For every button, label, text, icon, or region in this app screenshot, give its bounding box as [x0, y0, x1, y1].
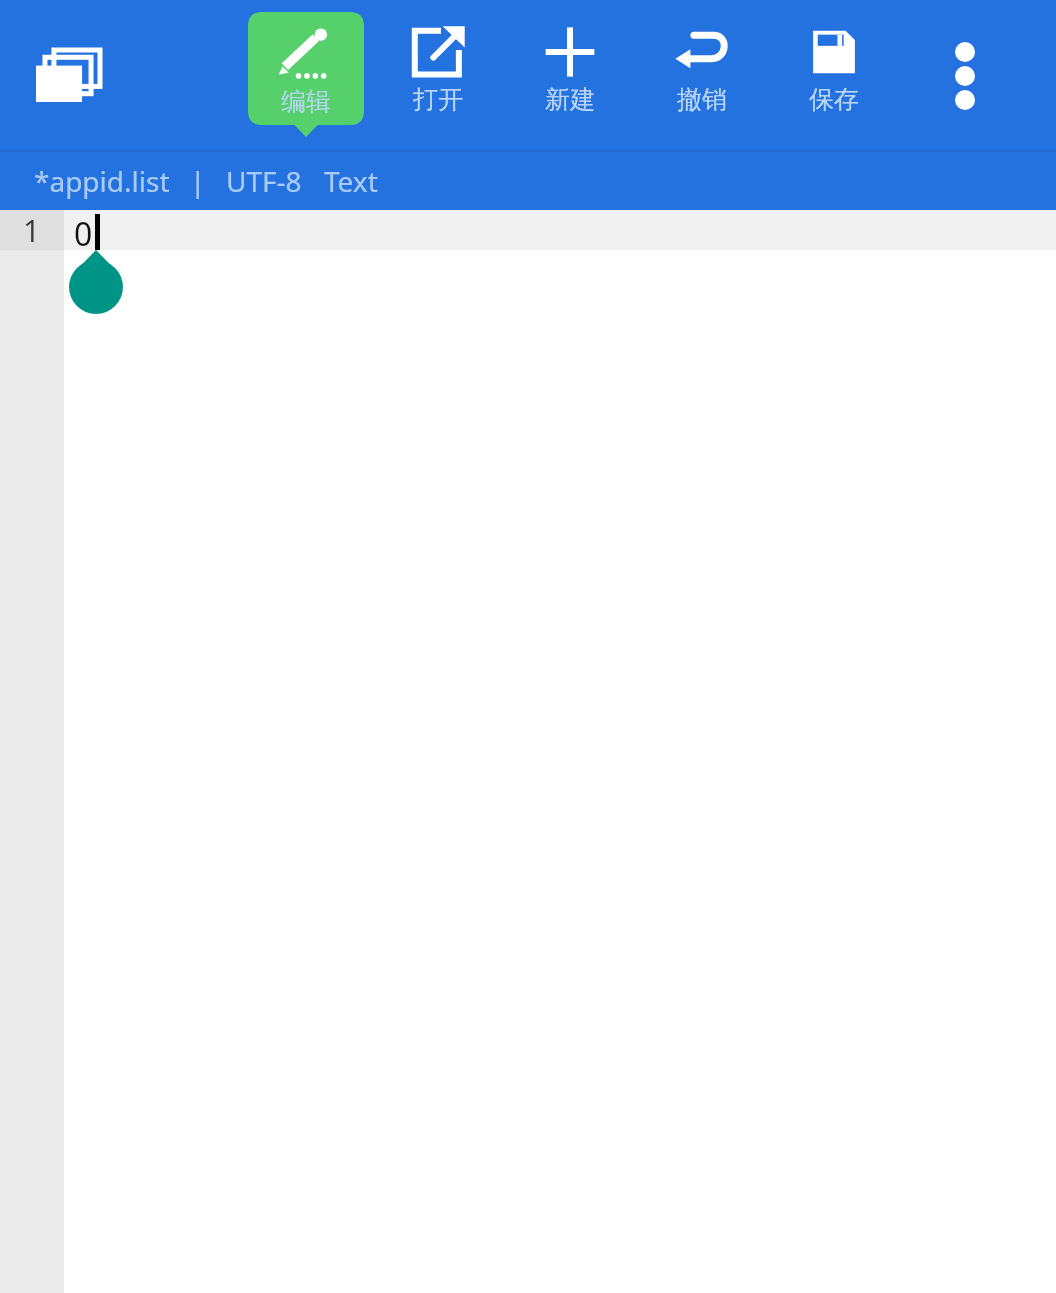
button[interactable]: Tabs — [16, 26, 120, 126]
staticText: *appid.list — [34, 162, 170, 200]
staticText: 1 — [23, 210, 41, 250]
button[interactable]: Undo — [654, 10, 750, 128]
staticText: 编辑 — [281, 86, 331, 117]
button[interactable]: More options — [920, 26, 1010, 126]
staticText: 打开 — [413, 84, 463, 115]
staticText: 撤销 — [677, 84, 727, 115]
button[interactable]: Open — [390, 10, 486, 128]
button[interactable]: Cursor handle — [66, 250, 126, 316]
staticText: 保存 — [809, 84, 859, 115]
staticText: 0 — [74, 212, 93, 256]
button[interactable]: 编辑 — [248, 12, 364, 152]
staticText: | — [190, 162, 206, 200]
staticText: 新建 — [545, 84, 595, 115]
staticText: Text — [324, 162, 378, 200]
button[interactable]: Save — [786, 10, 882, 128]
staticText: UTF-8 — [226, 162, 302, 200]
button[interactable]: New — [522, 10, 618, 128]
